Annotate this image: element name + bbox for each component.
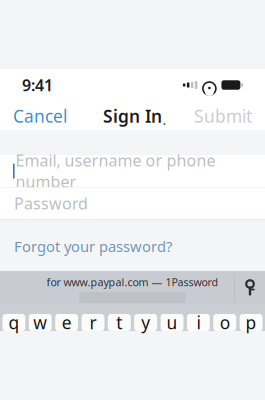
staticText: Forgot your password?: [14, 236, 172, 256]
staticText: Cancel: [13, 104, 67, 127]
button[interactable]: 1Password: [235, 273, 265, 303]
button[interactable]: q: [2, 314, 25, 331]
button[interactable]: Forgot your password?: [14, 229, 172, 263]
staticText: i: [196, 311, 200, 334]
staticText: e: [62, 311, 72, 334]
button[interactable]: Cancel: [13, 96, 67, 135]
button[interactable]: Submit: [194, 96, 252, 135]
staticText: Email, username or phone number: [16, 150, 216, 192]
button[interactable]: p: [240, 314, 262, 331]
button[interactable]: i: [187, 314, 210, 331]
staticText: Sign In: [103, 104, 162, 127]
button[interactable]: u: [161, 314, 183, 331]
button[interactable]: e: [55, 314, 78, 331]
staticText: for www.paypal.com — 1Password: [46, 275, 218, 289]
staticText: p: [246, 311, 257, 334]
staticText: u: [166, 311, 177, 334]
staticText: o: [220, 311, 230, 334]
button[interactable]: r: [82, 314, 104, 331]
button[interactable]: o: [213, 314, 236, 331]
staticText: t: [116, 311, 122, 334]
staticText: 9:41: [22, 74, 53, 96]
staticText: y: [141, 311, 150, 334]
button[interactable]: y: [134, 314, 157, 331]
staticText: Password: [14, 193, 88, 214]
button[interactable]: t: [108, 314, 131, 331]
staticText: w: [33, 311, 47, 334]
button[interactable]: w: [29, 314, 52, 331]
staticText: Submit: [194, 104, 252, 127]
staticText: r: [89, 311, 96, 334]
staticText: q: [8, 311, 19, 334]
